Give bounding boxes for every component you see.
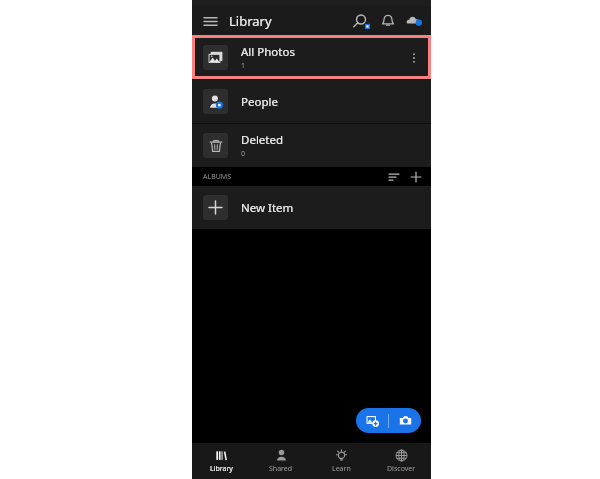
staticText: Library [210,464,233,474]
button[interactable]: Cloud status [401,8,427,34]
button[interactable]: Discover [371,443,431,479]
staticText: ALBUMS [203,172,231,182]
button[interactable]: Search [349,8,375,34]
button[interactable]: Menu [199,10,221,32]
button[interactable]: New Item [192,186,431,229]
button[interactable]: Add album [406,167,425,186]
staticText: Library [229,12,272,30]
button[interactable]: Take photo [389,408,421,433]
button[interactable]: Notifications [375,8,401,34]
button[interactable]: Learn [311,443,371,479]
button[interactable]: People [192,80,431,123]
staticText: 1 [241,61,246,71]
button[interactable]: Shared [251,443,311,479]
button[interactable]: More options [401,45,427,71]
staticText: Discover [387,464,416,474]
button[interactable]: All Photos [192,36,431,79]
staticText: Learn [332,464,351,474]
staticText: All Photos [241,44,295,60]
staticText: 0 [241,149,246,159]
staticText: New Item [241,200,294,216]
staticText: Shared [269,464,293,474]
staticText: Deleted [241,132,284,148]
button[interactable]: Add photos [356,408,388,433]
button[interactable]: Sort albums [384,167,403,186]
button[interactable]: Library [192,443,251,479]
staticText: People [241,94,278,110]
button[interactable]: Deleted [192,124,431,167]
